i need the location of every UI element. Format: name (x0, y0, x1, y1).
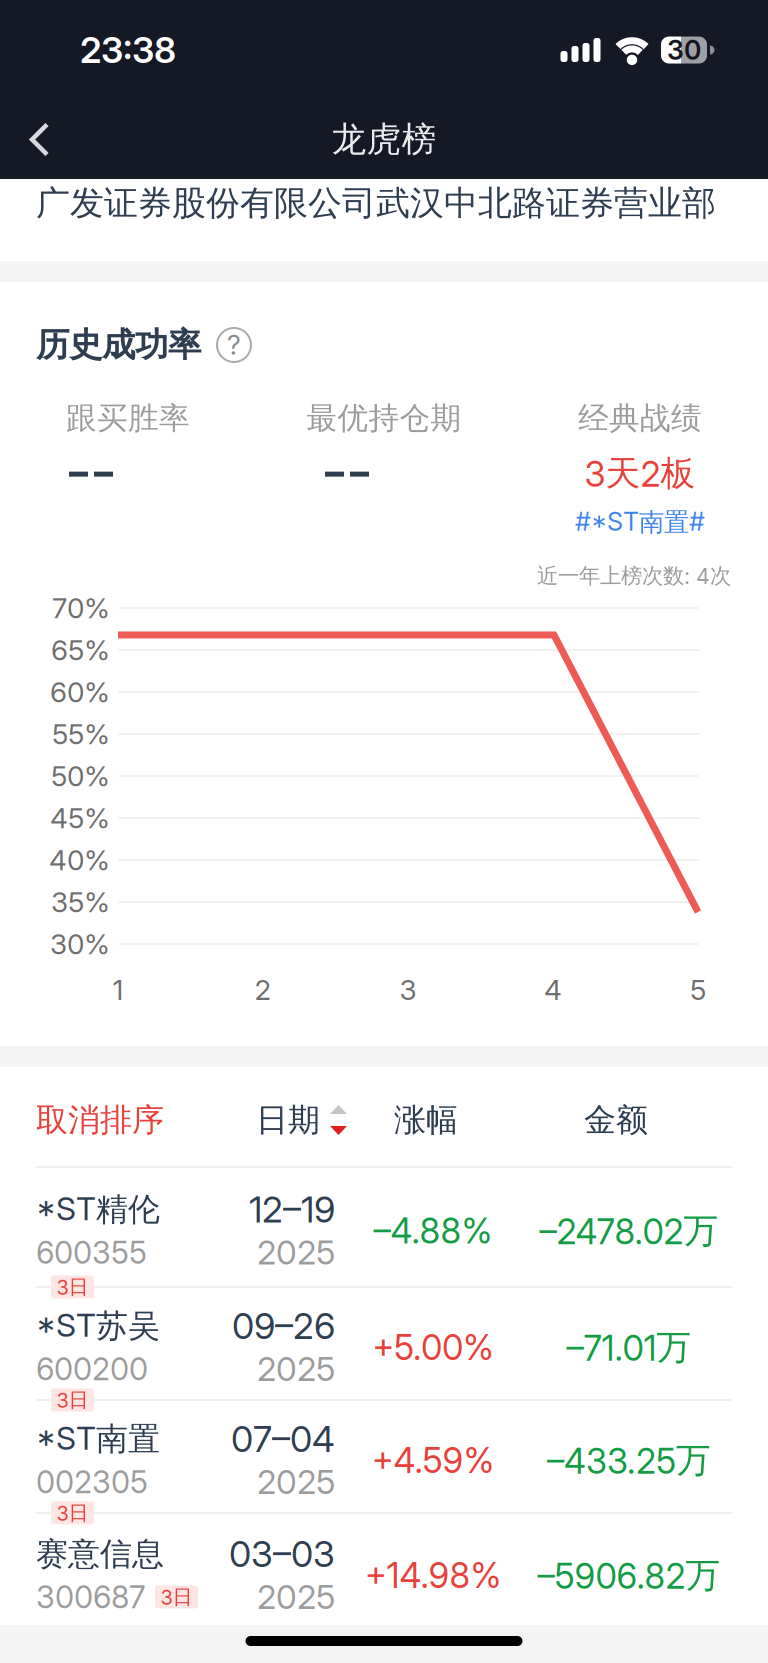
staticText: 3天2板 (584, 452, 695, 495)
staticText: 50% (51, 759, 110, 793)
staticText: 5 (690, 973, 706, 1007)
staticText: 金额 (584, 1100, 648, 1140)
staticText: 12–19 (249, 1188, 335, 1231)
button[interactable]: *ST精伦 (0, 1182, 768, 1272)
staticText: +5.00% (372, 1326, 494, 1368)
staticText: 30% (50, 927, 110, 961)
button[interactable]: 取消排序 (36, 1100, 216, 1140)
staticText: 3 (399, 973, 416, 1007)
button[interactable]: Back (0, 100, 79, 179)
staticText: 龙虎榜 (331, 118, 436, 161)
staticText: 35% (51, 885, 110, 919)
staticText: 2025 (257, 1577, 335, 1617)
staticText: 70% (52, 591, 110, 625)
staticText: 涨幅 (394, 1100, 458, 1140)
staticText: 取消排序 (36, 1100, 164, 1140)
staticText: 002305 (36, 1463, 148, 1500)
staticText: –71.01万 (566, 1326, 691, 1369)
staticText: 3日 (160, 1584, 192, 1610)
staticText: ? (227, 329, 241, 361)
staticText: 09–26 (232, 1304, 335, 1348)
staticText: 65% (51, 633, 110, 667)
staticText: 4 (544, 973, 562, 1007)
staticText: 跟买胜率 (66, 399, 190, 438)
staticText: –4.88% (373, 1210, 492, 1252)
button[interactable]: *ST苏吴 (0, 1302, 768, 1385)
button[interactable]: *ST南置 (0, 1415, 768, 1498)
button[interactable]: Help (217, 328, 251, 362)
staticText: 2025 (257, 1349, 335, 1389)
staticText: *ST苏吴 (36, 1306, 160, 1346)
staticText: 近一年上榜次数: 4次 (537, 562, 731, 589)
staticText: 3日 (56, 1274, 88, 1300)
staticText: 40% (49, 843, 110, 877)
staticText: 45% (50, 801, 110, 835)
staticText: 2025 (257, 1462, 335, 1502)
staticText: 23:38 (80, 28, 176, 72)
staticText: #*ST南置# (575, 506, 705, 538)
staticText: 广发证券股份有限公司武汉中北路证券营业部 (36, 182, 716, 225)
staticText: *ST南置 (36, 1419, 160, 1459)
staticText: 600200 (36, 1350, 148, 1387)
staticText: 1 (112, 973, 123, 1007)
staticText: 2 (254, 973, 271, 1007)
staticText: *ST精伦 (36, 1189, 160, 1230)
staticText: –5906.82万 (537, 1554, 720, 1597)
staticText: 经典战绩 (578, 399, 702, 438)
staticText: +14.98% (364, 1554, 501, 1596)
staticText: –433.25万 (547, 1439, 711, 1482)
staticText: 55% (52, 717, 110, 751)
staticText: 07–04 (231, 1417, 335, 1461)
staticText: 历史成功率 (36, 324, 201, 366)
staticText: 300687 (36, 1578, 146, 1615)
button[interactable]: 赛意信息 (0, 1528, 768, 1625)
staticText: 60% (50, 675, 110, 709)
staticText: 3日 (56, 1500, 88, 1526)
button[interactable]: 日期 (216, 1100, 347, 1140)
staticText: 赛意信息 (36, 1534, 164, 1574)
staticText: 2025 (257, 1232, 335, 1273)
staticText: 日期 (256, 1100, 320, 1140)
staticText: 30 (667, 34, 701, 66)
staticText: 03–03 (229, 1532, 335, 1576)
staticText: 3日 (56, 1387, 88, 1413)
staticText: +4.59% (371, 1439, 494, 1481)
staticText: 最优持仓期 (306, 399, 461, 438)
staticText: 600355 (36, 1234, 147, 1271)
staticText: –2478.02万 (539, 1209, 718, 1253)
